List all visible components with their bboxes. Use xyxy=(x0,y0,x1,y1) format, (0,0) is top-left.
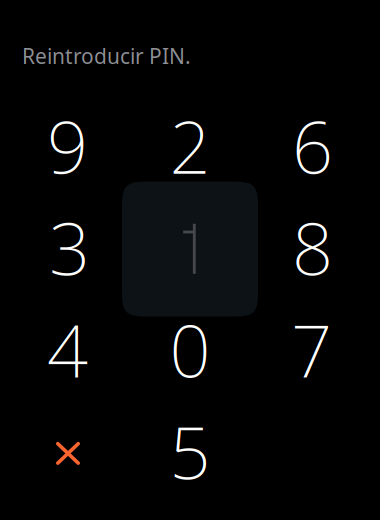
staticText: 0 xyxy=(169,302,210,397)
button[interactable]: 3 xyxy=(6,196,128,298)
button[interactable]: 2 xyxy=(129,95,251,197)
staticText: 4 xyxy=(47,302,88,397)
button[interactable]: 9 xyxy=(6,95,128,197)
button[interactable]: Delete xyxy=(6,400,128,502)
staticText: 9 xyxy=(47,98,88,193)
button[interactable] xyxy=(129,196,251,298)
staticText: 5 xyxy=(169,404,210,499)
button[interactable]: 7 xyxy=(251,298,373,400)
button[interactable]: 8 xyxy=(251,196,373,298)
staticText: 6 xyxy=(292,98,333,193)
button[interactable]: 4 xyxy=(6,298,128,400)
staticText: 7 xyxy=(291,302,332,397)
staticText: 3 xyxy=(49,199,90,295)
staticText: 2 xyxy=(169,98,210,193)
button[interactable]: 5 xyxy=(129,400,251,502)
staticText: 8 xyxy=(292,199,333,295)
button[interactable]: 0 xyxy=(129,298,251,400)
button[interactable]: 6 xyxy=(251,95,373,197)
staticText: Reintroducir PIN. xyxy=(22,41,191,70)
